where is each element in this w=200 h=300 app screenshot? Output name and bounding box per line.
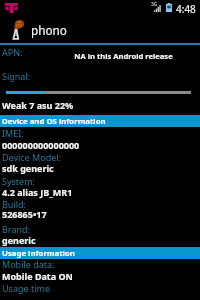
staticText: 4.2 alias JB_MR1 — [2, 186, 73, 198]
staticText: NA in this Android release — [74, 51, 173, 61]
button[interactable]: Device and OS information — [0, 115, 200, 127]
staticText: Build: — [2, 198, 27, 210]
staticText: 526865•17 — [2, 208, 47, 220]
staticText: APN: — [2, 46, 23, 58]
staticText: 4:48 — [176, 2, 196, 16]
staticText: sdk generic — [2, 162, 54, 174]
staticText: Mobile data: — [2, 258, 55, 270]
staticText: phono — [31, 22, 67, 38]
staticText: IMEI: — [2, 127, 24, 139]
staticText: generic — [2, 234, 36, 246]
button[interactable]: Usage information — [0, 247, 200, 259]
staticText: 3G — [151, 1, 158, 8]
staticText: Usage time — [2, 282, 50, 294]
staticText: Mobile Data ON — [2, 270, 73, 282]
staticText: Weak 7 asu 22% — [2, 99, 74, 111]
staticText: Device Model: — [2, 151, 62, 163]
staticText: Usage information — [2, 248, 75, 259]
staticText: Signal: — [2, 70, 31, 82]
staticText: 000000000000000 — [2, 139, 80, 151]
staticText: System: — [2, 175, 35, 187]
staticText: Device and OS information — [2, 116, 106, 127]
staticText: Brand: — [2, 223, 30, 235]
other: phono app icon — [11, 19, 25, 40]
